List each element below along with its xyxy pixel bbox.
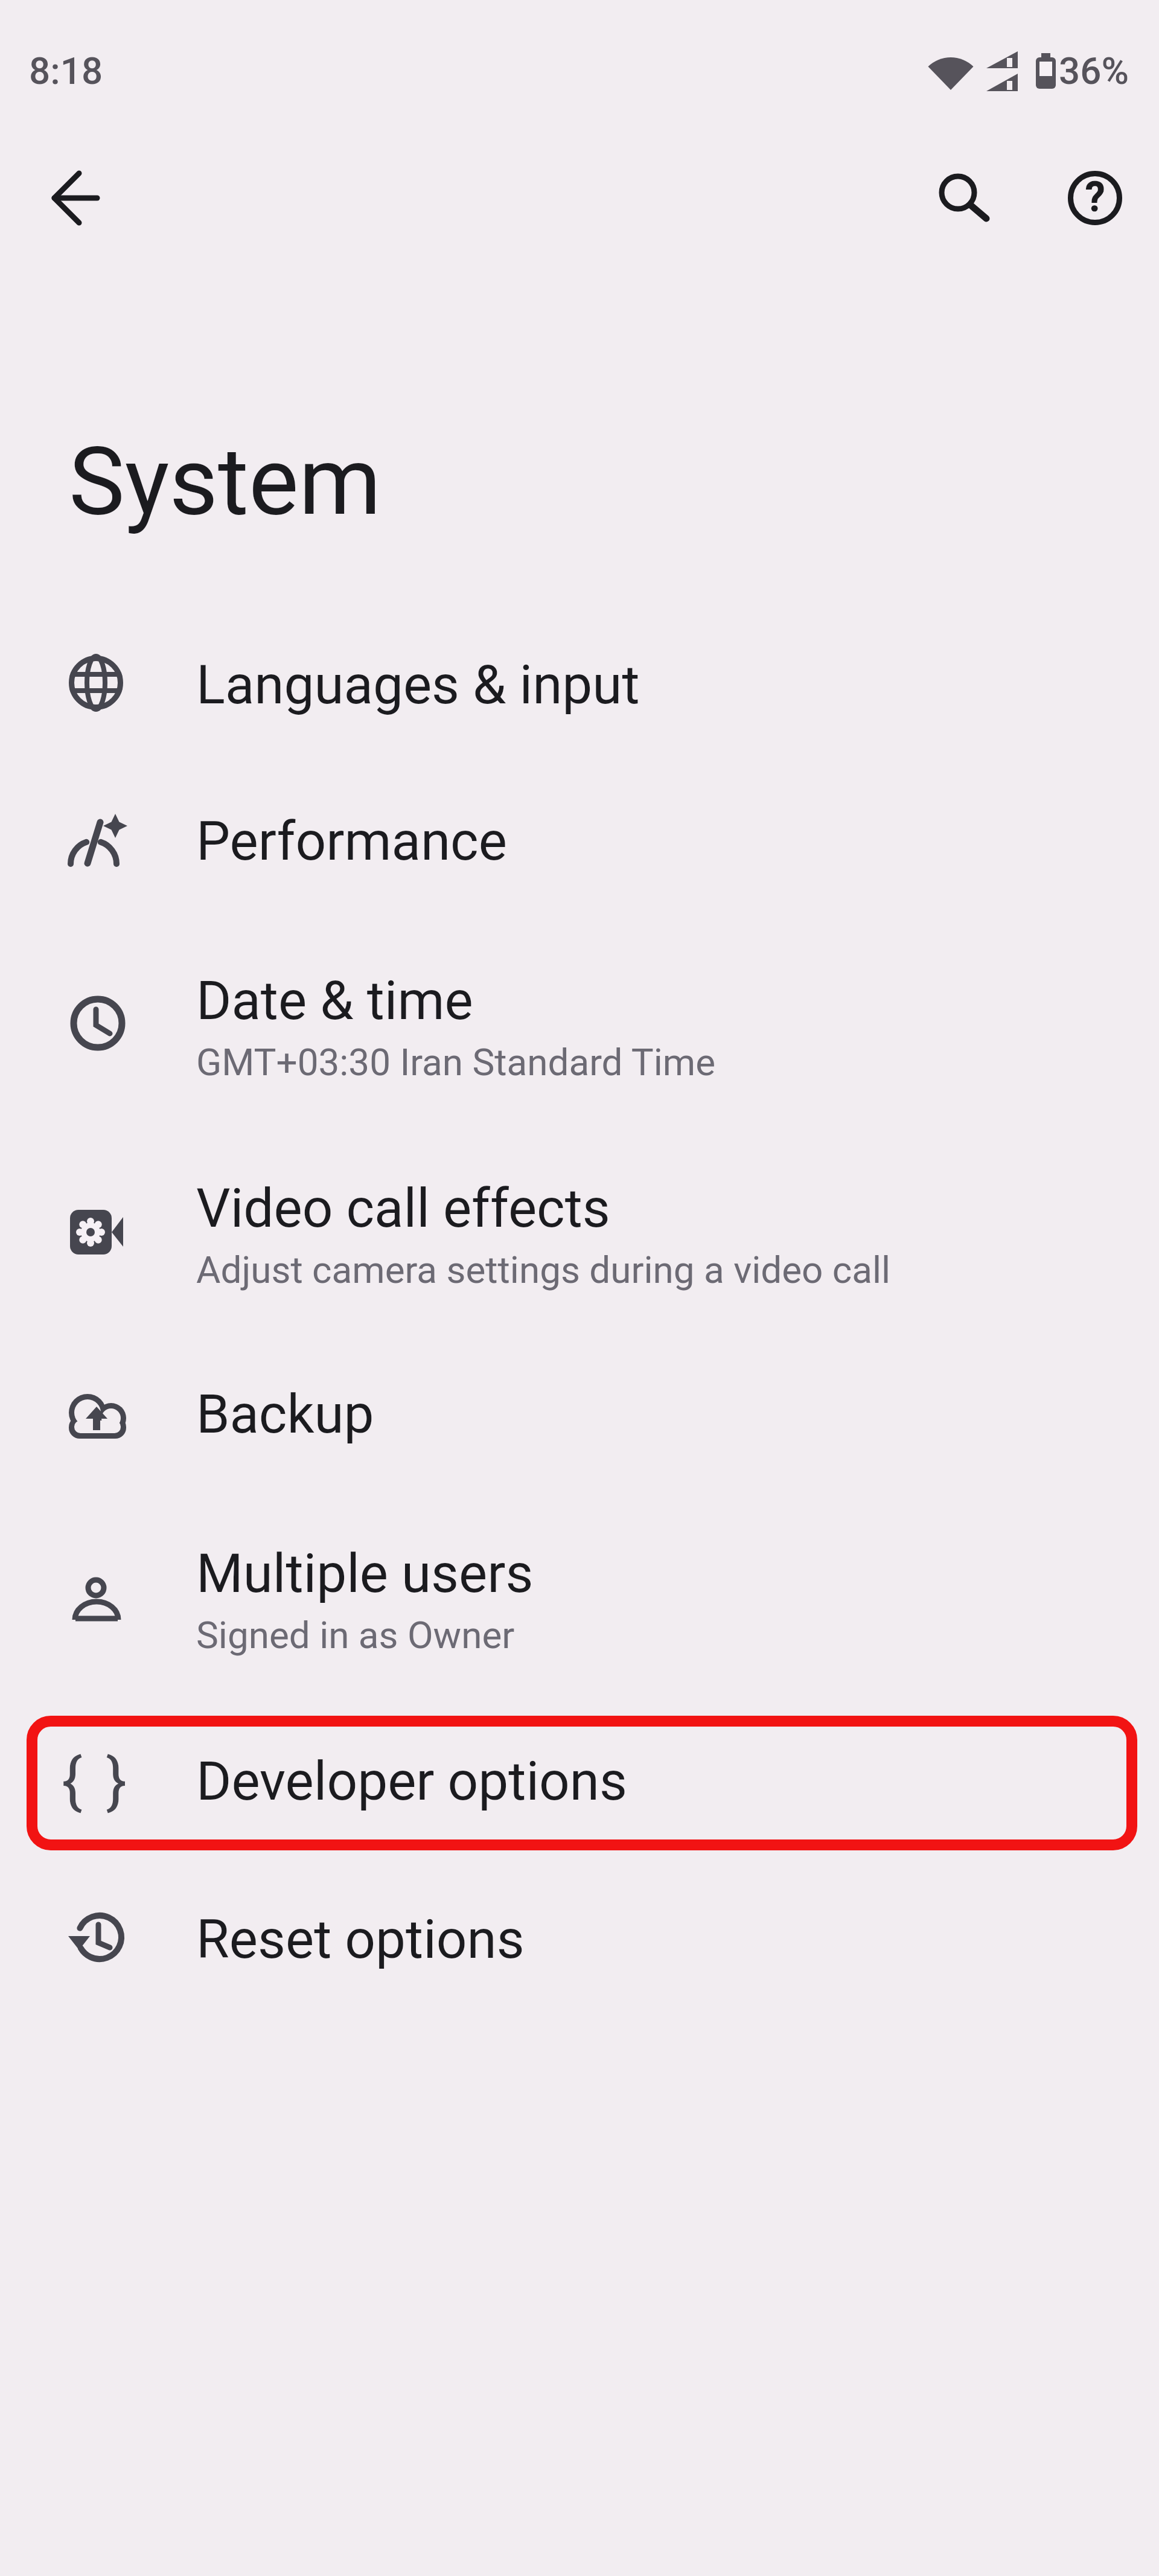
staticText: Languages & input xyxy=(196,653,640,716)
button[interactable]: Performance xyxy=(0,762,1159,920)
staticText: { } xyxy=(62,1745,132,1817)
button[interactable]: Video call effects xyxy=(0,1128,1159,1340)
staticText: 36% xyxy=(1059,49,1129,93)
button[interactable] xyxy=(918,151,999,232)
staticText: Performance xyxy=(196,810,507,872)
staticText: System xyxy=(69,426,382,537)
staticText: Developer options xyxy=(196,1750,627,1812)
button[interactable]: Backup xyxy=(0,1335,1159,1493)
button[interactable]: ? xyxy=(1054,156,1136,238)
staticText: Backup xyxy=(196,1382,374,1445)
staticText: Date & time xyxy=(196,969,473,1032)
staticText: 8:18 xyxy=(29,49,103,93)
button[interactable]: Languages & input xyxy=(0,606,1159,764)
staticText: ? xyxy=(1085,174,1105,220)
staticText: Reset options xyxy=(196,1908,525,1970)
button[interactable]: Reset options xyxy=(0,1860,1159,2018)
button[interactable]: Date & time xyxy=(0,921,1159,1132)
button[interactable]: Multiple users xyxy=(0,1494,1159,1705)
staticText: Video call effects xyxy=(196,1177,610,1239)
staticText: Signed in as Owner xyxy=(196,1613,515,1657)
staticText: Adjust camera settings during a video ca… xyxy=(196,1248,891,1292)
button[interactable] xyxy=(34,156,117,238)
staticText: Multiple users xyxy=(196,1542,534,1605)
button[interactable]: { } xyxy=(0,1702,1159,1860)
staticText: GMT+03:30 Iran Standard Time xyxy=(196,1040,716,1084)
